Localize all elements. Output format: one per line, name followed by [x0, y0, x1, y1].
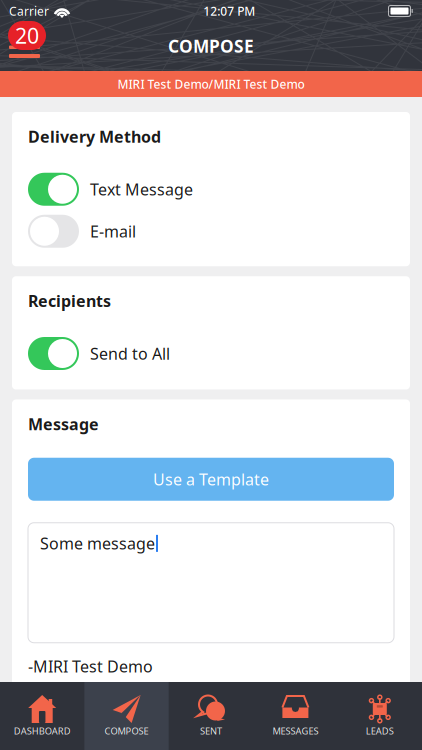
staticText: MESSAGES: [272, 725, 318, 737]
staticText: Text Message: [90, 179, 193, 200]
button[interactable]: Use a Template: [28, 458, 394, 501]
button[interactable]: LEADS: [338, 682, 422, 750]
button[interactable]: Menu: [8, 21, 52, 65]
staticText: Carrier: [9, 3, 49, 19]
button[interactable]: COMPOSE: [84, 682, 169, 750]
staticText: Delivery Method: [28, 126, 161, 147]
staticText: Some message: [40, 533, 155, 554]
staticText: Message: [28, 413, 99, 435]
staticText: 12:07 PM: [203, 3, 255, 19]
button[interactable]: E-mail: [28, 210, 394, 252]
staticText: SENT: [200, 725, 222, 737]
staticText: Use a Template: [153, 469, 269, 490]
button[interactable]: Text Message: [28, 168, 394, 210]
button[interactable]: Send to All: [28, 332, 394, 374]
staticText: MIRI Test Demo/MIRI Test Demo: [117, 76, 304, 92]
staticText: DASHBOARD: [14, 725, 71, 737]
staticText: Recipients: [28, 290, 111, 311]
staticText: -MIRI Test Demo: [28, 656, 153, 677]
button[interactable]: SENT: [169, 682, 253, 750]
button[interactable]: MESSAGES: [253, 682, 338, 750]
staticText: COMPOSE: [105, 725, 149, 737]
staticText: 20: [15, 21, 39, 50]
staticText: Send to All: [90, 343, 170, 364]
staticText: LEADS: [366, 725, 394, 737]
button[interactable]: DASHBOARD: [0, 682, 84, 750]
staticText: COMPOSE: [168, 34, 254, 57]
staticText: E-mail: [90, 221, 136, 242]
